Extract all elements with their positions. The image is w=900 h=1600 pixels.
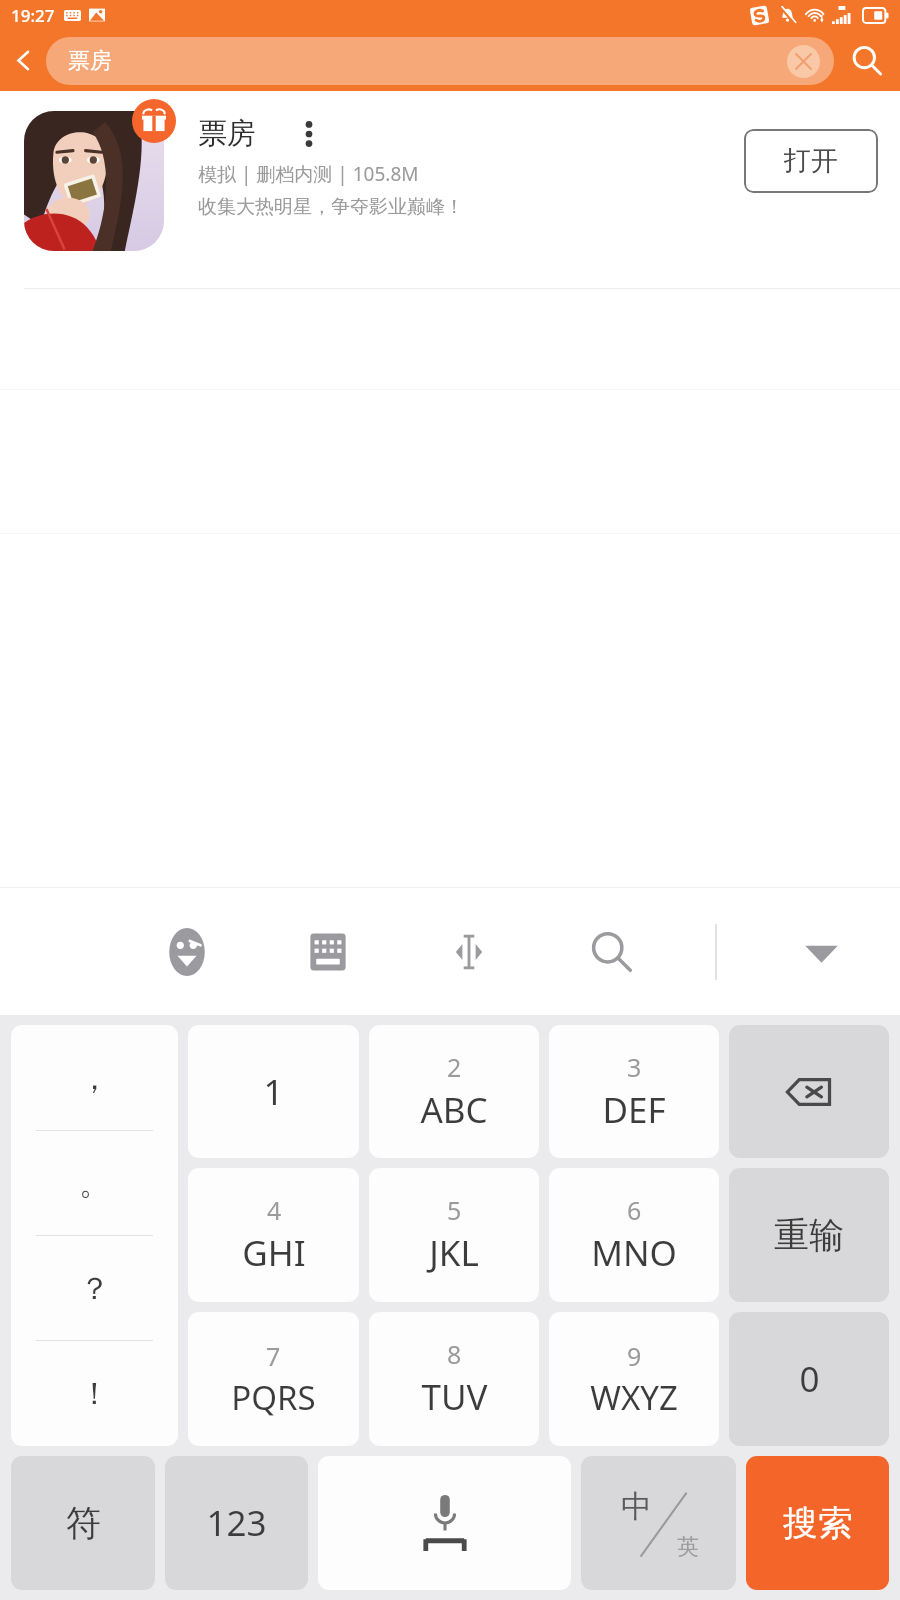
staticText: 收集大热明星，争夺影业巅峰！: [198, 195, 464, 219]
button[interactable]: Space: [318, 1456, 571, 1590]
staticText: 5: [447, 1193, 462, 1227]
staticText: 2: [447, 1050, 462, 1084]
staticText: 123: [206, 1499, 267, 1547]
button[interactable]: 搜索: [746, 1456, 889, 1590]
button[interactable]: 票房: [46, 37, 834, 85]
button[interactable]: Backspace: [729, 1025, 889, 1158]
staticText: 模拟 | 删档内测 | 105.8M: [198, 161, 419, 187]
staticText: GHI: [242, 1229, 306, 1277]
button[interactable]: Search: [574, 915, 648, 989]
button[interactable]: More options: [298, 117, 320, 151]
button[interactable]: Hide keyboard: [784, 915, 858, 989]
staticText: 中: [621, 1487, 652, 1526]
staticText: 票房: [68, 47, 112, 75]
button[interactable]: 8: [369, 1312, 539, 1446]
staticText: 符: [66, 1501, 101, 1545]
staticText: 1: [263, 1068, 284, 1116]
staticText: DEF: [602, 1086, 666, 1134]
staticText: 打开: [784, 144, 838, 178]
button[interactable]: 5: [369, 1168, 539, 1302]
staticText: 9: [627, 1339, 642, 1373]
staticText: 重输: [774, 1213, 844, 1257]
button[interactable]: Keyboard layout: [291, 915, 365, 989]
staticText: ABC: [420, 1086, 488, 1134]
staticText: ！: [79, 1374, 110, 1413]
staticText: 6: [627, 1193, 642, 1227]
staticText: 4: [267, 1193, 282, 1227]
button[interactable]: 重输: [729, 1168, 889, 1302]
button[interactable]: Search: [834, 30, 900, 91]
button[interactable]: 2: [369, 1025, 539, 1158]
staticText: 票房: [198, 115, 256, 152]
staticText: PQRS: [231, 1375, 316, 1420]
button[interactable]: Emoji: [150, 915, 224, 989]
button[interactable]: 9: [549, 1312, 719, 1446]
button[interactable]: 123: [165, 1456, 308, 1590]
button[interactable]: Clear text: [787, 45, 820, 78]
button[interactable]: ！: [11, 1341, 178, 1446]
button[interactable]: ，: [11, 1025, 178, 1131]
button[interactable]: 符: [11, 1456, 155, 1590]
staticText: TUV: [421, 1373, 488, 1421]
staticText: 。: [79, 1164, 110, 1203]
staticText: 英: [677, 1533, 699, 1561]
staticText: ？: [79, 1269, 110, 1308]
button[interactable]: 4: [188, 1168, 359, 1302]
staticText: WXYZ: [590, 1375, 678, 1420]
button[interactable]: 3: [549, 1025, 719, 1158]
staticText: MNO: [591, 1229, 677, 1277]
button[interactable]: 7: [188, 1312, 359, 1446]
staticText: 0: [799, 1355, 820, 1403]
button[interactable]: ？: [11, 1236, 178, 1341]
button[interactable]: 6: [549, 1168, 719, 1302]
staticText: 8: [447, 1337, 462, 1371]
button[interactable]: 票房: [0, 91, 900, 289]
staticText: 3: [627, 1050, 642, 1084]
staticText: 19:27: [11, 4, 55, 27]
button[interactable]: 1: [188, 1025, 359, 1158]
button[interactable]: 打开: [744, 129, 878, 193]
staticText: ，: [79, 1059, 110, 1098]
staticText: 搜索: [783, 1501, 853, 1545]
button[interactable]: Chinese English toggle: [581, 1456, 736, 1590]
button[interactable]: Back: [0, 30, 46, 91]
button[interactable]: 0: [729, 1312, 889, 1446]
button[interactable]: 。: [11, 1131, 178, 1236]
button[interactable]: Move cursor: [432, 915, 506, 989]
staticText: JKL: [429, 1229, 479, 1277]
staticText: 7: [266, 1339, 281, 1373]
